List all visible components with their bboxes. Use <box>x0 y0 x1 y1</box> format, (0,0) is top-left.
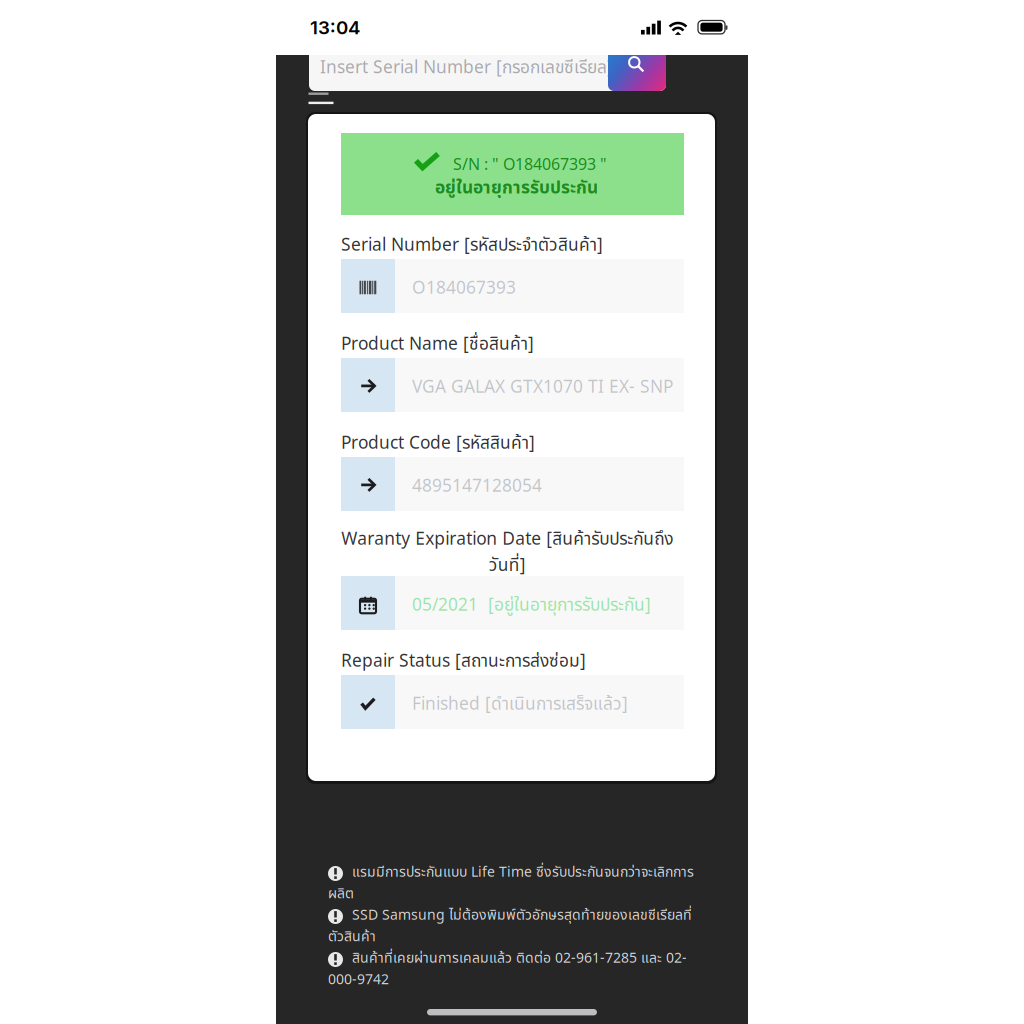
staticText: Insert Serial Number [กรอกเลขซีเรียล] <box>320 55 613 81</box>
staticText: แรมมีการประกันแบบ Life Time ซึ่งรับประกั… <box>328 862 694 883</box>
staticText: ตัวสินค้า <box>328 926 376 948</box>
staticText: 05/2021 [อยู่ในอายุการรับประกัน] <box>412 592 651 619</box>
staticText: อยู่ในอายุการรับประกัน <box>435 175 598 201</box>
staticText: SSD Samsung ไม่ต้องพิมพ์ตัวอักษรสุดท้ายข… <box>328 905 692 926</box>
staticText: O184067393 <box>412 275 516 302</box>
staticText: Repair Status [สถานะการส่งซ่อม] <box>341 648 586 675</box>
button[interactable]: Search <box>608 45 666 91</box>
staticText: Finished [ดำเนินการเสร็จแล้ว] <box>412 691 628 718</box>
staticText: VGA GALAX GTX1070 TI EX- SNP <box>412 374 673 401</box>
staticText: 000-9742 <box>328 969 389 991</box>
staticText: Waranty Expiration Date [สินค้ารับประกัน… <box>341 526 673 579</box>
staticText: S/N : " O184067393 " <box>453 153 607 177</box>
staticText: Product Name [ชื่อสินค้า] <box>341 331 534 358</box>
staticText: Serial Number [รหัสประจำตัวสินค้า] <box>341 232 603 259</box>
staticText: สินค้าที่เคยผ่านการเคลมแล้ว ติดต่อ 02-96… <box>328 948 687 969</box>
staticText: ผลิต <box>328 883 354 905</box>
button[interactable]: Menu <box>308 92 338 114</box>
staticText: Product Code [รหัสสินค้า] <box>341 430 535 457</box>
staticText: 13:04 <box>310 16 360 39</box>
staticText: 4895147128054 <box>412 473 542 500</box>
